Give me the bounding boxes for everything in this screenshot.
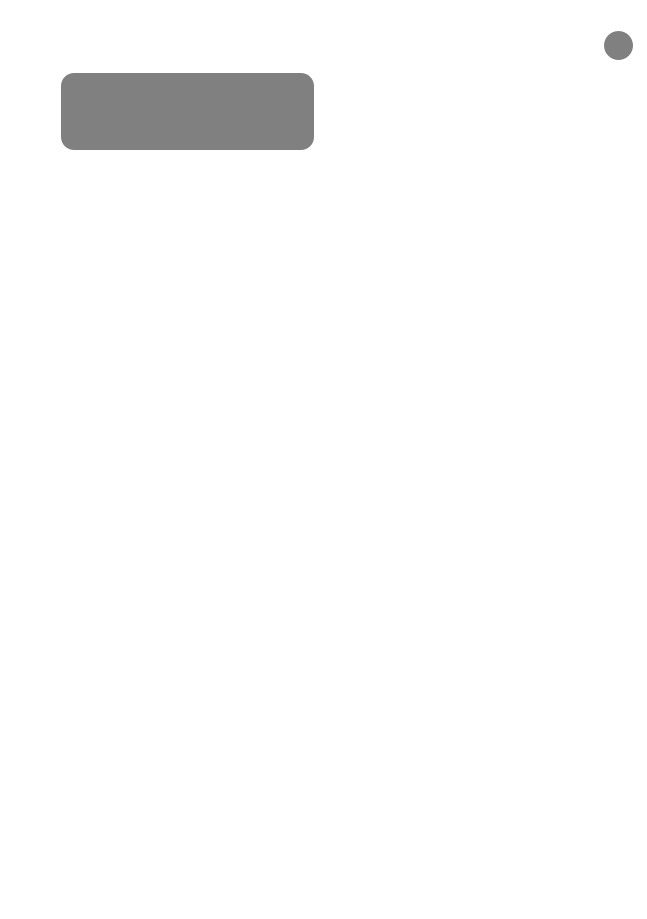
button[interactable]: Profile	[604, 31, 633, 60]
button[interactable]: Title	[61, 73, 314, 150]
